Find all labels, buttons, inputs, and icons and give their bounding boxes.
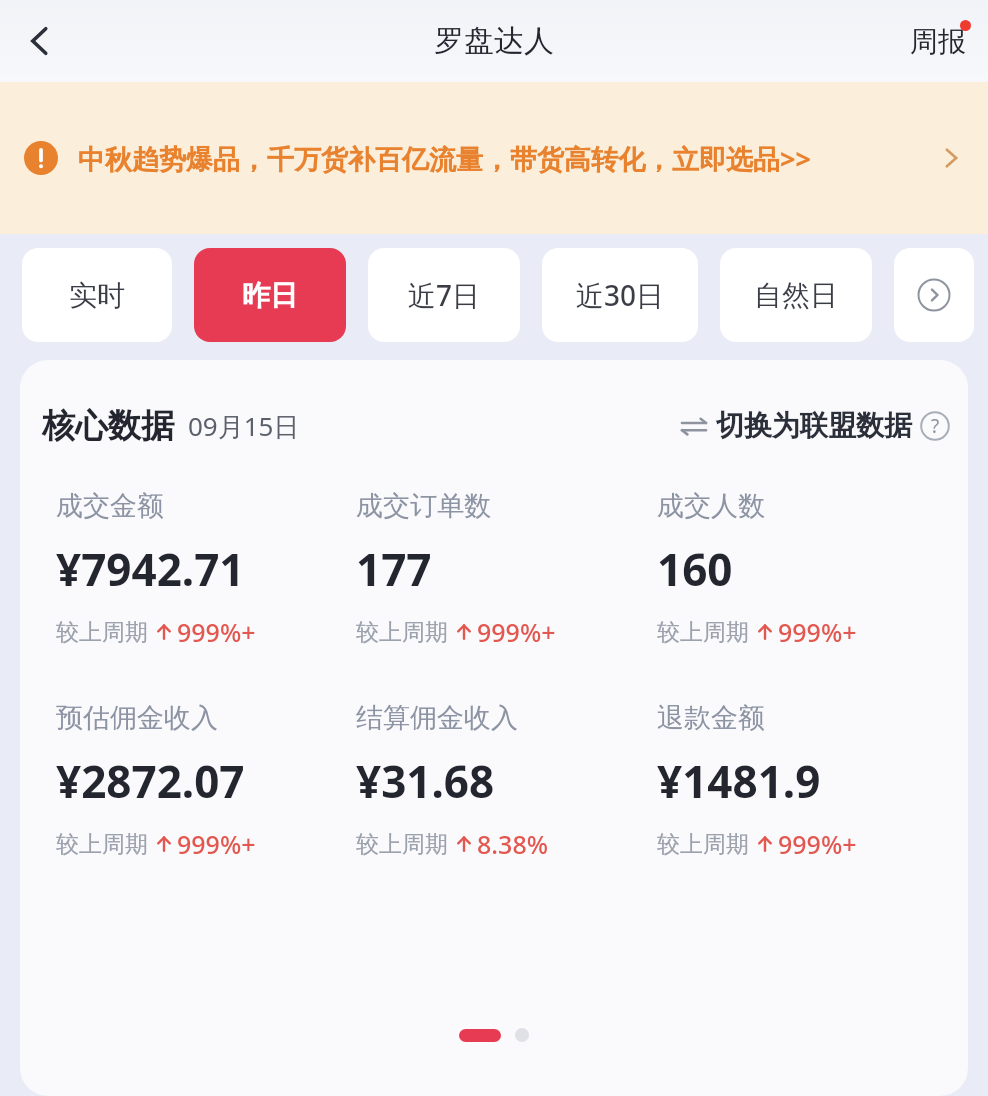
staticText: ¥31.68 bbox=[356, 751, 495, 811]
staticText: 成交人数 bbox=[657, 489, 765, 523]
staticText: ¥7942.71 bbox=[56, 539, 245, 599]
staticText: 结算佣金收入 bbox=[356, 701, 518, 735]
staticText: 较上周期 bbox=[56, 618, 148, 647]
staticText: 8.38% bbox=[477, 827, 549, 861]
button[interactable]: 实时 bbox=[22, 248, 172, 342]
staticText: 近30日 bbox=[576, 276, 665, 314]
button[interactable]: 昨日 bbox=[194, 248, 346, 342]
button[interactable]: More periods bbox=[894, 248, 974, 342]
button[interactable]: 中秋趋势爆品，千万货补百亿流量，带货高转化，立即选品>> bbox=[0, 82, 988, 234]
staticText: ¥2872.07 bbox=[56, 751, 245, 811]
staticText: 核心数据 bbox=[42, 405, 174, 447]
staticText: 较上周期 bbox=[657, 830, 749, 859]
button[interactable]: 切换为联盟数据 bbox=[679, 404, 950, 447]
staticText: 09月15日 bbox=[188, 408, 300, 444]
staticText: 999%+ bbox=[778, 615, 857, 649]
staticText: 成交订单数 bbox=[356, 489, 491, 523]
button[interactable]: 自然日 bbox=[720, 248, 872, 342]
staticText: 实时 bbox=[69, 278, 125, 313]
staticText: 罗盘达人 bbox=[434, 22, 554, 60]
staticText: 177 bbox=[356, 539, 432, 599]
staticText: ? bbox=[931, 413, 940, 439]
staticText: ¥1481.9 bbox=[657, 751, 821, 811]
staticText: 999%+ bbox=[778, 827, 857, 861]
staticText: 自然日 bbox=[754, 278, 838, 313]
staticText: 较上周期 bbox=[56, 830, 148, 859]
staticText: 昨日 bbox=[242, 278, 298, 313]
button[interactable]: 周报 bbox=[904, 16, 972, 67]
staticText: 较上周期 bbox=[356, 830, 448, 859]
staticText: 预估佣金收入 bbox=[56, 701, 218, 735]
staticText: 较上周期 bbox=[657, 618, 749, 647]
button[interactable]: 近7日 bbox=[368, 248, 520, 342]
staticText: 切换为联盟数据 bbox=[716, 408, 912, 443]
staticText: 成交金额 bbox=[56, 489, 164, 523]
staticText: 较上周期 bbox=[356, 618, 448, 647]
staticText: 中秋趋势爆品，千万货补百亿流量，带货高转化，立即选品>> bbox=[78, 140, 916, 177]
staticText: 近7日 bbox=[408, 276, 481, 314]
button[interactable]: 近30日 bbox=[542, 248, 698, 342]
staticText: 999%+ bbox=[177, 615, 256, 649]
staticText: 周报 bbox=[910, 24, 966, 59]
staticText: 999%+ bbox=[177, 827, 256, 861]
staticText: 退款金额 bbox=[657, 701, 765, 735]
staticText: 160 bbox=[657, 539, 733, 599]
staticText: 999%+ bbox=[477, 615, 556, 649]
button[interactable]: Open activity bbox=[928, 135, 974, 181]
button[interactable]: Back bbox=[10, 11, 70, 71]
